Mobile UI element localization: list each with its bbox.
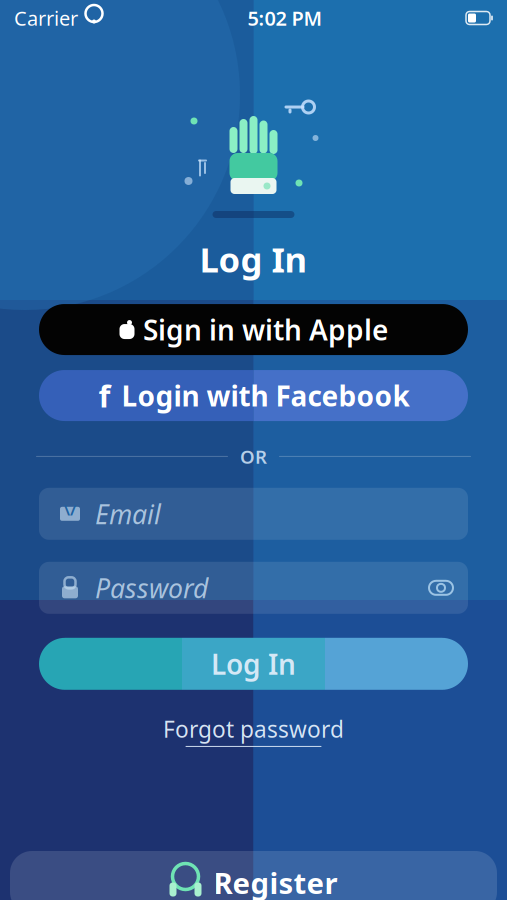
staticText: OR: [240, 444, 267, 469]
button[interactable]: f: [39, 370, 468, 421]
staticText: \/: [64, 500, 76, 520]
staticText: 5:02 PM: [247, 5, 322, 31]
staticText: Sign in with Apple: [143, 311, 388, 348]
staticText: Log In: [199, 236, 307, 282]
staticText: Password: [95, 570, 208, 605]
staticText: Carrier: [14, 5, 78, 31]
button[interactable]: Sign in with Apple: [39, 304, 468, 355]
button[interactable]: Show password: [414, 562, 468, 614]
button[interactable]: Log In: [39, 638, 468, 690]
staticText: Login with Facebook: [121, 377, 409, 414]
button[interactable]: Forgot password: [151, 708, 356, 753]
staticText: Log In: [211, 645, 296, 682]
staticText: Forgot password: [163, 714, 344, 744]
staticText: f: [98, 375, 110, 416]
staticText: Email: [95, 496, 161, 531]
button[interactable]: Register: [10, 851, 497, 900]
staticText: Register: [213, 863, 337, 900]
